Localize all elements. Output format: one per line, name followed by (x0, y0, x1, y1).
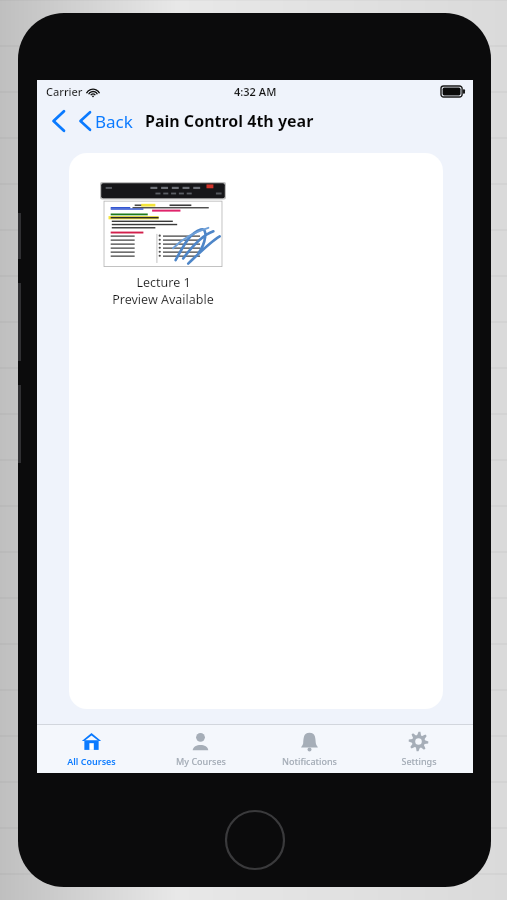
button[interactable]: Back (45, 104, 71, 138)
staticText: Settings (401, 755, 437, 767)
staticText: My Courses (176, 755, 226, 767)
staticText: Pain Control 4th year (145, 110, 314, 132)
button[interactable]: My Courses (146, 725, 255, 773)
staticText: Notifications (282, 755, 337, 767)
button[interactable]: Home button (224, 809, 286, 871)
button[interactable]: Lecture 1 (100, 182, 226, 308)
button[interactable]: All Courses (37, 725, 146, 773)
staticText: Carrier (46, 84, 83, 99)
staticText: Preview Available (112, 291, 214, 308)
staticText: 4:32 AM (234, 84, 277, 99)
button[interactable]: Back (79, 104, 133, 138)
button[interactable]: Settings (364, 725, 473, 773)
staticText: Lecture 1 (136, 274, 191, 291)
staticText: All Courses (67, 755, 116, 767)
staticText: Back (95, 110, 133, 133)
button[interactable]: Notifications (255, 725, 364, 773)
